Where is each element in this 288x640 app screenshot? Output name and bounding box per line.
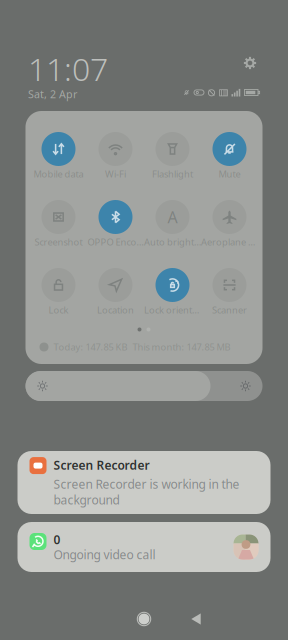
button[interactable]: Aeroplane m… [201, 200, 258, 250]
staticText: Wi-Fi [105, 168, 126, 180]
staticText: Screen Recorder [53, 457, 149, 473]
button[interactable]: Lock orientat… [144, 268, 201, 318]
button[interactable]: Screenshot [30, 200, 87, 250]
button[interactable]: 0 [17, 522, 270, 572]
button[interactable]: Screen Recorder [17, 451, 270, 514]
staticText: Today: 147.85 KB [53, 341, 127, 353]
staticText: Ongoing video call [53, 546, 155, 562]
staticText: Flashlight [152, 168, 193, 180]
staticText: Screenshot [34, 236, 82, 248]
staticText: Mobile data [33, 168, 83, 180]
staticText: Lock [48, 304, 68, 316]
button[interactable]: Scanner [201, 268, 258, 318]
staticText: Screen Recorder is working in the backgr… [53, 476, 239, 508]
staticText: This month: 147.85 MB [132, 341, 230, 353]
staticText: Lock orientat… [144, 304, 201, 316]
staticText: OPPO Enco… [87, 236, 143, 248]
staticText: Aeroplane m… [201, 236, 258, 248]
button[interactable]: Mobile data [30, 132, 87, 182]
button[interactable]: OPPO Enco… [87, 200, 144, 250]
staticText: Auto brightne… [144, 236, 201, 248]
staticText: 0 [53, 531, 60, 547]
button[interactable]: Lock [30, 268, 87, 318]
staticText: Location [97, 304, 134, 316]
button[interactable]: Settings [240, 53, 260, 73]
button[interactable]: Brightness [25, 371, 262, 401]
staticText: Mute [218, 168, 240, 180]
button[interactable]: Home [118, 599, 170, 639]
button[interactable]: A [144, 200, 201, 250]
button[interactable]: Location [87, 268, 144, 318]
staticText: Sat, 2 Apr [28, 87, 77, 101]
button[interactable]: Flashlight [144, 132, 201, 182]
button[interactable]: Mute [201, 132, 258, 182]
button[interactable]: Back [170, 599, 222, 639]
staticText: 11:07 [28, 47, 108, 90]
button[interactable]: Wi-Fi [87, 132, 144, 182]
staticText: A [167, 206, 177, 228]
staticText: Scanner [212, 304, 247, 316]
